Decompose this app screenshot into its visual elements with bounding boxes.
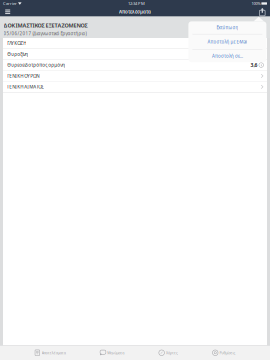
button[interactable]: Αποστολή με E-Mail [188, 34, 266, 49]
button[interactable]: Αποστολή σε... [188, 50, 266, 62]
button[interactable]: Ρυθμίσεις [212, 345, 236, 360]
button[interactable]: Θυρεοειδοτρόπος ορμόνη [3, 60, 267, 70]
staticText: Αποτελέσματα [42, 350, 66, 355]
staticText: Αποστολή με E-Mail [207, 39, 247, 45]
button[interactable]: Θυροξίνη [3, 49, 267, 59]
staticText: Θυρεοειδοτρόπος ορμόνη [7, 62, 65, 68]
staticText: ΓΕΝΙΚΗ ΑΙΜΑΤΟΣ [7, 84, 44, 90]
staticText: ΓΕΝΙΚΗ ΟΥΡΩΝ [7, 73, 39, 79]
button[interactable]: Εκτύπωση [188, 21, 266, 34]
staticText: ΓΛΥΚΟΖΗ [7, 40, 26, 46]
staticText: ΔΟΚΙΜΑΣΤΙΚΟΣ ΕΞΕΤΑΖΟΜΕΝΟΣ [4, 22, 88, 29]
button[interactable]: Χάρτες [159, 345, 178, 360]
button[interactable]: Share [256, 7, 269, 17]
staticText: Αποτελέσματα [119, 9, 151, 15]
staticText: 100% [251, 1, 260, 6]
staticText: 05/06/2017 (Διαγνωστικό Εργαστήριο) [4, 31, 87, 37]
staticText: 3,6 [250, 62, 257, 68]
staticText: Θυροξίνη [7, 51, 28, 57]
staticText: Carrier [3, 1, 17, 6]
button[interactable]: ΓΕΝΙΚΗ ΟΥΡΩΝ [3, 71, 267, 81]
staticText: Αποστολή σε... [212, 53, 243, 59]
button[interactable]: ΓΕΝΙΚΗ ΑΙΜΑΤΟΣ [3, 82, 267, 92]
button[interactable]: ΓΛΥΚΟΖΗ [3, 38, 267, 48]
staticText: Ρυθμίσεις [220, 350, 236, 355]
staticText: Χάρτες [166, 350, 178, 355]
button[interactable]: Αποτελέσματα [34, 345, 66, 360]
staticText: Μηνύματα [107, 350, 124, 355]
button[interactable]: Μηνύματα [100, 345, 124, 360]
staticText: 12:34 PM [128, 1, 145, 6]
button[interactable]: Menu [1, 7, 14, 17]
staticText: Εκτύπωση [216, 25, 238, 31]
